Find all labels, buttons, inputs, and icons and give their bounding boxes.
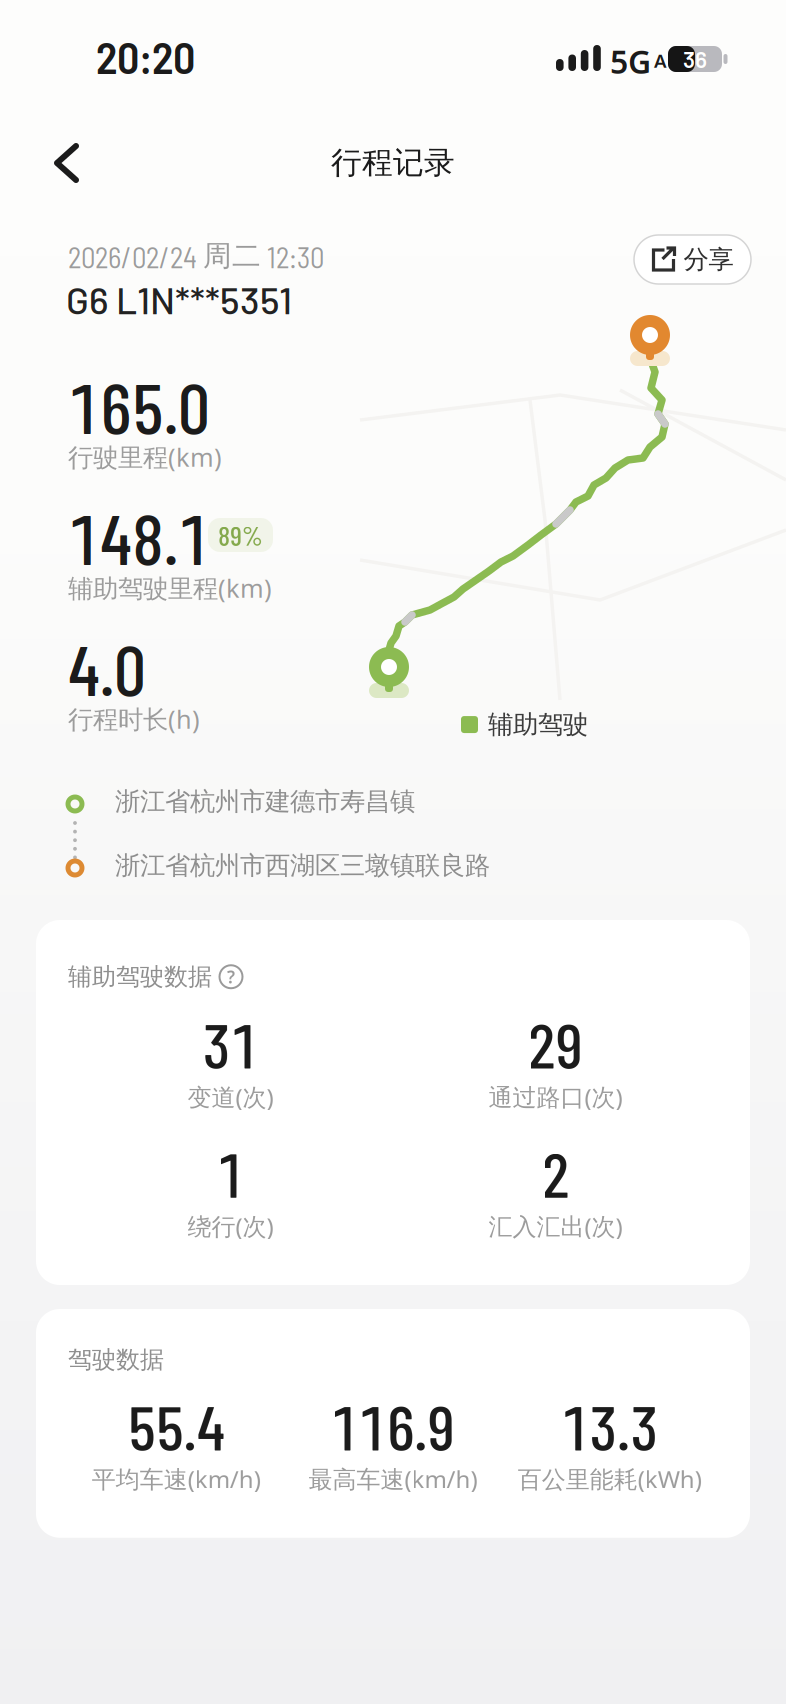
staticText: 辅助驾驶数据	[68, 962, 212, 991]
button[interactable]: 分享	[634, 235, 751, 284]
staticText: 浙江省杭州市建德市寿昌镇	[115, 786, 415, 817]
staticText: 平均车速(km/h)	[92, 1463, 261, 1495]
staticText: 29	[527, 1006, 583, 1081]
staticText: 辅助驾驶里程(km)	[68, 571, 272, 605]
button[interactable]: Back	[53, 143, 81, 183]
staticText: 2026/02/24 周二 12:30	[68, 238, 324, 274]
staticText: 148.1	[68, 495, 210, 579]
staticText: 1	[216, 1136, 244, 1210]
staticText: A	[654, 48, 667, 73]
staticText: 辅助驾驶	[488, 709, 588, 740]
staticText: 行程记录	[331, 144, 455, 182]
staticText: 变道(次)	[187, 1081, 273, 1113]
staticText: 汇入汇出(次)	[488, 1210, 622, 1242]
staticText: 31	[202, 1006, 258, 1081]
staticText: 2	[541, 1136, 569, 1210]
button[interactable]: 帮助	[218, 964, 244, 990]
staticText: 55.4	[128, 1388, 225, 1463]
staticText: 5G	[610, 40, 651, 82]
staticText: ?	[227, 965, 235, 988]
staticText: 36	[683, 45, 707, 73]
staticText: 165.0	[68, 364, 210, 448]
staticText: 百公里能耗(kWh)	[518, 1463, 702, 1495]
staticText: 最高车速(km/h)	[308, 1463, 477, 1495]
staticText: 浙江省杭州市西湖区三墩镇联良路	[115, 850, 490, 881]
staticText: 20:20	[96, 30, 195, 83]
staticText: 116.9	[330, 1388, 455, 1463]
staticText: 分享	[683, 244, 733, 275]
staticText: 行程时长(h)	[68, 702, 200, 736]
staticText: 驾驶数据	[68, 1345, 164, 1374]
staticText: 89%	[218, 519, 263, 551]
staticText: 13.3	[561, 1388, 658, 1463]
staticText: 行驶里程(km)	[68, 440, 222, 474]
staticText: 4.0	[68, 626, 146, 710]
staticText: 绕行(次)	[187, 1210, 273, 1242]
staticText: G6 L1N***5351	[66, 277, 292, 322]
staticText: 通过路口(次)	[488, 1081, 622, 1113]
